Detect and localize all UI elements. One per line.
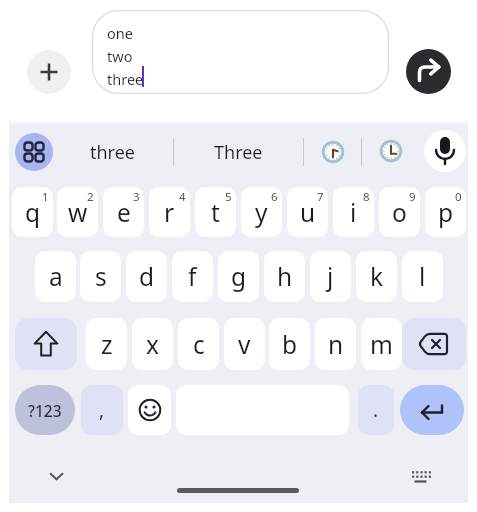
staticText: c — [193, 328, 205, 361]
staticText: ?123 — [28, 400, 62, 421]
button[interactable] — [15, 133, 53, 171]
button[interactable] — [177, 488, 299, 493]
staticText: Three — [214, 140, 263, 165]
staticText: b — [282, 328, 298, 361]
button[interactable]: f — [172, 251, 213, 302]
staticText: y — [255, 196, 268, 229]
button[interactable]: r — [149, 187, 190, 237]
button[interactable]: g — [218, 251, 259, 302]
button[interactable]: u — [287, 187, 328, 237]
staticText: k — [370, 260, 384, 293]
button[interactable]: d — [126, 251, 167, 302]
button[interactable]: , — [81, 385, 123, 435]
staticText: h — [277, 260, 293, 293]
button[interactable] — [402, 318, 466, 370]
staticText: 6 — [271, 189, 278, 205]
button[interactable]: l — [402, 251, 443, 302]
button[interactable]: m — [361, 318, 402, 370]
button[interactable]: b — [269, 318, 310, 370]
staticText: m — [370, 328, 393, 361]
staticText: 3 — [133, 189, 140, 205]
button[interactable]: Three — [188, 134, 289, 170]
staticText: s — [95, 260, 107, 293]
staticText: 5 — [225, 189, 232, 205]
staticText: 4 — [179, 189, 186, 205]
button[interactable]: t — [195, 187, 236, 237]
staticText: v — [238, 328, 251, 361]
button[interactable]: w — [57, 187, 98, 237]
button[interactable]: x — [132, 318, 173, 370]
button[interactable]: i — [333, 187, 374, 237]
staticText: r — [164, 196, 175, 229]
staticText: 0 — [455, 189, 462, 205]
button[interactable] — [400, 385, 464, 435]
staticText: 8 — [363, 189, 370, 205]
staticText: z — [101, 328, 113, 361]
button[interactable]: j — [310, 251, 351, 302]
staticText: t — [211, 196, 220, 229]
staticText: l — [419, 260, 426, 293]
staticText: 9 — [409, 189, 416, 205]
button[interactable]: three — [62, 134, 162, 170]
staticText: n — [328, 328, 344, 361]
button[interactable]: q — [12, 187, 53, 237]
staticText: i — [350, 196, 357, 229]
staticText: f — [188, 260, 197, 293]
button[interactable]: e — [103, 187, 144, 237]
staticText: three — [90, 140, 135, 165]
staticText: q — [25, 196, 41, 229]
button[interactable]: n — [315, 318, 356, 370]
staticText: . — [373, 397, 379, 423]
button[interactable]: one — [92, 10, 389, 94]
button[interactable]: o — [379, 187, 420, 237]
staticText: one — [107, 23, 133, 43]
button[interactable] — [128, 385, 171, 435]
button[interactable]: p — [425, 187, 466, 237]
staticText: p — [438, 196, 454, 229]
button[interactable]: ?123 — [15, 385, 75, 435]
staticText: two — [107, 46, 133, 66]
button[interactable]: c — [178, 318, 219, 370]
staticText: x — [146, 328, 159, 361]
staticText: a — [49, 260, 63, 293]
button[interactable]: z — [86, 318, 127, 370]
button[interactable] — [424, 130, 466, 172]
staticText: three — [107, 69, 144, 89]
staticText: 1 — [42, 189, 49, 205]
staticText: w — [68, 196, 88, 229]
button[interactable] — [406, 49, 451, 94]
button[interactable]: y — [241, 187, 282, 237]
button[interactable]: v — [224, 318, 265, 370]
button[interactable] — [406, 462, 435, 491]
button[interactable] — [27, 50, 71, 94]
staticText: d — [139, 260, 155, 293]
button[interactable]: h — [264, 251, 305, 302]
staticText: 7 — [317, 189, 324, 205]
staticText: j — [327, 260, 334, 293]
button[interactable] — [15, 318, 77, 370]
button[interactable]: . — [358, 385, 394, 435]
staticText: u — [300, 196, 316, 229]
staticText: , — [99, 397, 105, 423]
staticText: g — [231, 260, 247, 293]
button[interactable] — [42, 462, 71, 491]
staticText: o — [392, 196, 407, 229]
button[interactable]: a — [35, 251, 76, 302]
staticText: e — [117, 196, 131, 229]
staticText: 2 — [87, 189, 94, 205]
button[interactable]: s — [80, 251, 121, 302]
button[interactable]: k — [356, 251, 397, 302]
